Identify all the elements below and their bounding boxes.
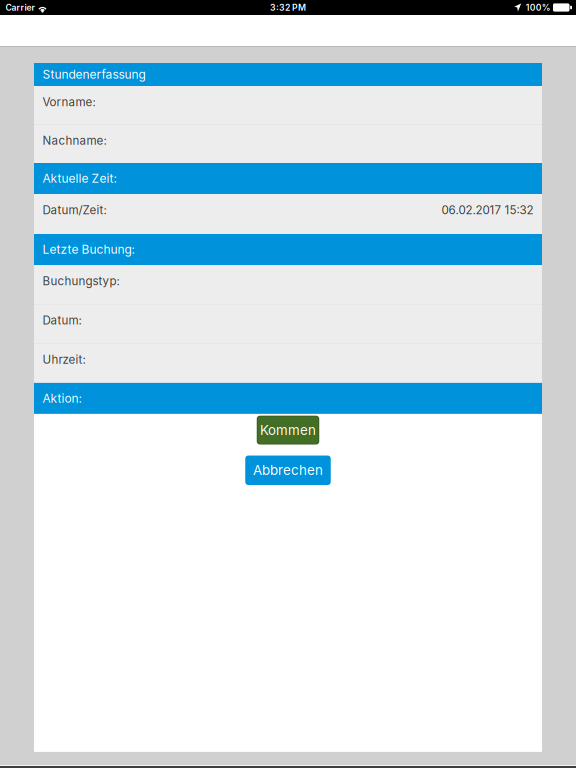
staticText: 3:32 PM	[270, 2, 306, 13]
staticText: Stundenerfassung	[42, 67, 145, 82]
staticText: Aktion:	[42, 391, 81, 406]
staticText: Aktuelle Zeit:	[42, 171, 116, 186]
staticText: Abbrechen	[253, 462, 323, 478]
staticText: Uhrzeit:	[42, 353, 85, 367]
staticText: Datum:	[42, 313, 81, 327]
button[interactable]: Kommen	[257, 416, 319, 444]
staticText: Datum/Zeit:	[42, 203, 106, 217]
staticText: 100%	[526, 2, 551, 13]
button[interactable]: Abbrechen	[245, 455, 331, 485]
staticText: Carrier	[6, 2, 35, 13]
staticText: Vorname:	[42, 95, 95, 109]
staticText: Buchungstyp:	[42, 274, 119, 288]
staticText: Nachname:	[42, 133, 106, 147]
staticText: Kommen	[260, 422, 316, 438]
staticText: 06.02.2017 15:32	[442, 203, 534, 217]
staticText: Letzte Buchung:	[42, 242, 134, 257]
